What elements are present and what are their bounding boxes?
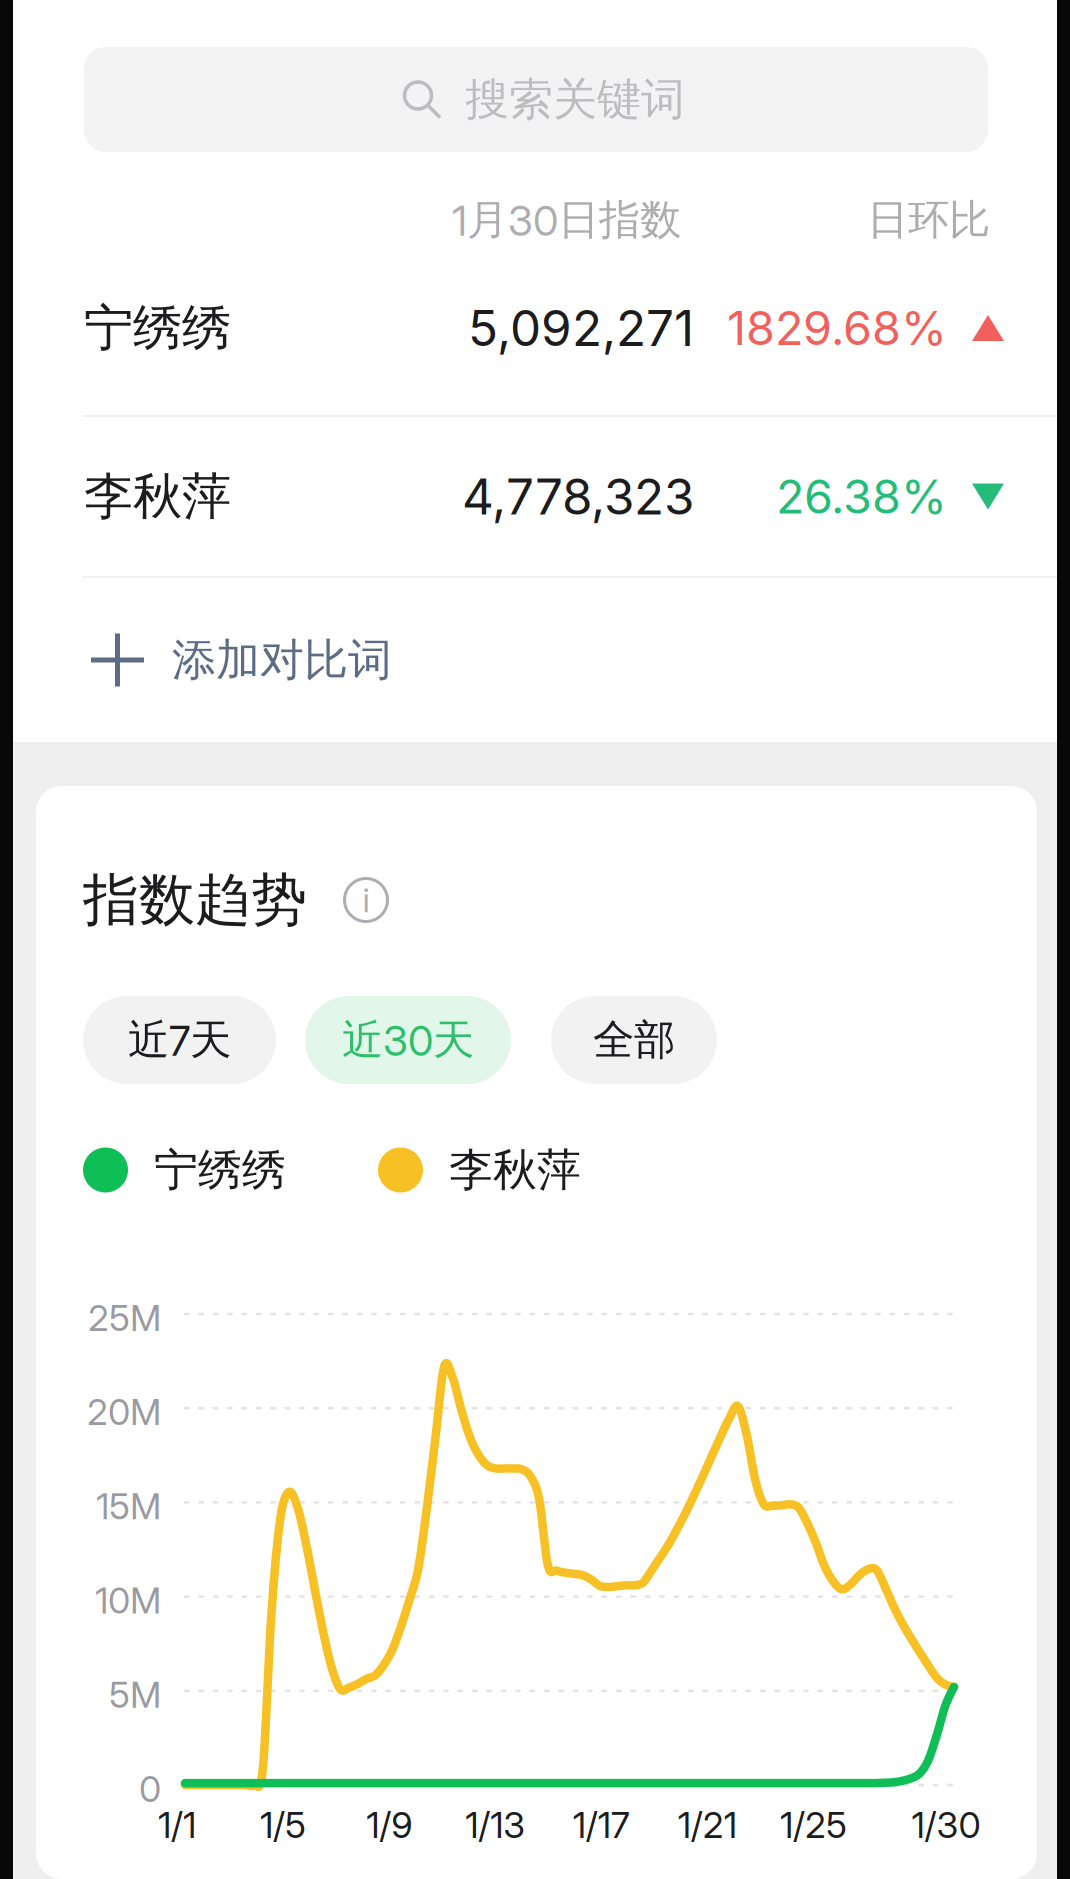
staticText: 1829.68%: [727, 300, 947, 356]
staticText: 李秋萍: [84, 465, 231, 527]
staticText: 1月30日指数: [452, 194, 681, 246]
staticText: 20M: [87, 1390, 161, 1434]
staticText: 26.38%: [776, 468, 947, 525]
staticText: 日环比: [867, 194, 990, 246]
staticText: 1/17: [573, 1803, 630, 1847]
button[interactable]: 添加对比词: [13, 578, 1057, 742]
staticText: 5,092,271: [468, 298, 694, 358]
staticText: 搜索关键词: [465, 72, 685, 127]
staticText: 添加对比词: [172, 632, 392, 688]
staticText: 李秋萍: [449, 1142, 581, 1198]
staticText: 1/13: [465, 1803, 525, 1847]
button[interactable]: 全部: [551, 996, 717, 1084]
staticText: 近30天: [342, 1014, 474, 1066]
staticText: 0: [139, 1767, 161, 1811]
button[interactable]: 近7天: [83, 996, 276, 1084]
staticText: 全部: [593, 1014, 675, 1066]
staticText: 15M: [96, 1484, 161, 1528]
button[interactable]: 近30天: [305, 996, 511, 1084]
staticText: 1/5: [260, 1803, 306, 1847]
staticText: 宁绣绣: [84, 297, 231, 359]
staticText: 4,778,323: [462, 467, 694, 526]
staticText: i: [362, 880, 369, 920]
staticText: 25M: [88, 1296, 161, 1340]
staticText: 1/21: [678, 1803, 737, 1847]
staticText: 1/25: [780, 1803, 847, 1847]
button[interactable]: 关于指数趋势: [343, 877, 389, 923]
staticText: 10M: [95, 1579, 161, 1622]
staticText: 5M: [109, 1673, 161, 1716]
staticText: 近7天: [128, 1014, 231, 1066]
staticText: 1/1: [158, 1803, 196, 1847]
staticText: 1/9: [366, 1803, 412, 1847]
staticText: 宁绣绣: [154, 1142, 286, 1198]
staticText: 1/30: [911, 1803, 980, 1847]
staticText: 指数趋势: [83, 865, 307, 935]
button[interactable]: 搜索关键词: [84, 47, 988, 152]
